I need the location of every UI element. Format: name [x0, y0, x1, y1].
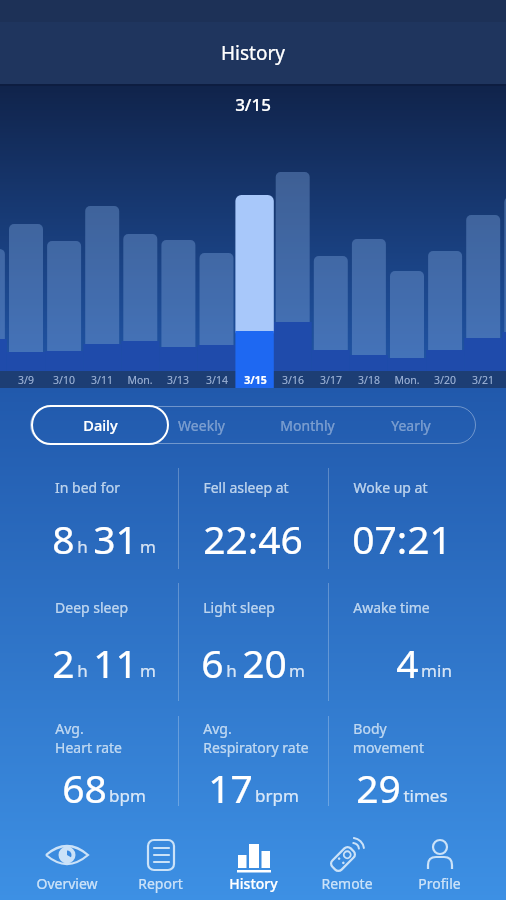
button[interactable]: 4	[350, 636, 498, 688]
staticText: Weekly	[178, 416, 225, 435]
staticText: 3/18	[358, 373, 380, 387]
staticText: Fell asleep at	[203, 478, 289, 497]
button[interactable]: Report	[114, 830, 207, 900]
staticText: Awake time	[353, 598, 430, 617]
button[interactable]: 8	[30, 512, 178, 564]
staticText: Deep sleep	[55, 598, 128, 617]
button[interactable]: Yearly	[366, 406, 456, 444]
button[interactable]: Monthly	[262, 406, 352, 444]
staticText: Remote	[321, 874, 373, 893]
staticText: 22:46	[203, 512, 303, 564]
staticText: 68	[62, 761, 107, 813]
staticText: 11	[93, 636, 138, 688]
staticText: 3/9	[18, 373, 34, 387]
staticText: Woke up at	[353, 478, 428, 497]
staticText: Heart rate	[55, 738, 122, 757]
staticText: 31	[93, 512, 138, 564]
staticText: Overview	[36, 874, 98, 893]
staticText: Respiratory rate	[203, 738, 309, 757]
staticText: 3/15	[244, 373, 267, 387]
staticText: Daily	[83, 415, 118, 435]
button[interactable]: 68	[30, 761, 178, 813]
button[interactable]: Remote	[300, 830, 393, 900]
staticText: 3/17	[320, 373, 342, 387]
button[interactable]: Weekly	[156, 406, 246, 444]
staticText: 6	[201, 636, 224, 688]
staticText: 17	[208, 761, 253, 813]
button[interactable]: Profile	[393, 830, 486, 900]
staticText: Mon.	[394, 373, 420, 387]
button[interactable]: 22:46	[178, 512, 328, 564]
staticText: 3/11	[91, 373, 113, 387]
staticText: 2	[52, 636, 75, 688]
staticText: Monthly	[280, 416, 335, 435]
staticText: 20	[242, 636, 287, 688]
button[interactable]: Daily	[31, 405, 169, 445]
staticText: History	[229, 874, 278, 893]
staticText: 3/21	[472, 373, 494, 387]
staticText: 8	[52, 512, 75, 564]
staticText: min	[421, 659, 452, 682]
staticText: History	[221, 40, 285, 66]
staticText: 07:21	[352, 512, 452, 564]
staticText: Profile	[418, 874, 461, 893]
staticText: 3/16	[282, 373, 304, 387]
button[interactable]: 29	[328, 761, 476, 813]
staticText: times	[403, 784, 448, 807]
staticText: movement	[353, 738, 424, 757]
staticText: 3/10	[53, 373, 75, 387]
button[interactable]: 07:21	[328, 512, 476, 564]
staticText: Avg.	[55, 719, 84, 738]
staticText: 4	[396, 636, 419, 688]
staticText: Avg.	[203, 719, 232, 738]
button[interactable]: 17	[178, 761, 328, 813]
staticText: h	[77, 659, 88, 682]
staticText: Yearly	[391, 416, 431, 435]
staticText: m	[140, 535, 156, 558]
button[interactable]: History	[207, 830, 300, 900]
staticText: Mon.	[127, 373, 153, 387]
button[interactable]: Overview	[20, 830, 114, 900]
staticText: Body	[353, 719, 387, 738]
staticText: Report	[138, 874, 183, 893]
button[interactable]: 2	[30, 636, 178, 688]
staticText: 3/15	[235, 93, 271, 116]
staticText: m	[140, 659, 156, 682]
staticText: 3/20	[434, 373, 456, 387]
staticText: m	[289, 659, 305, 682]
staticText: In bed for	[55, 478, 120, 497]
staticText: Light sleep	[203, 598, 275, 617]
staticText: brpm	[255, 784, 299, 807]
staticText: 3/14	[206, 373, 228, 387]
staticText: bpm	[109, 784, 146, 807]
staticText: h	[226, 659, 237, 682]
staticText: 3/13	[167, 373, 189, 387]
button[interactable]: 6	[178, 636, 328, 688]
staticText: h	[77, 535, 88, 558]
staticText: 29	[356, 761, 401, 813]
